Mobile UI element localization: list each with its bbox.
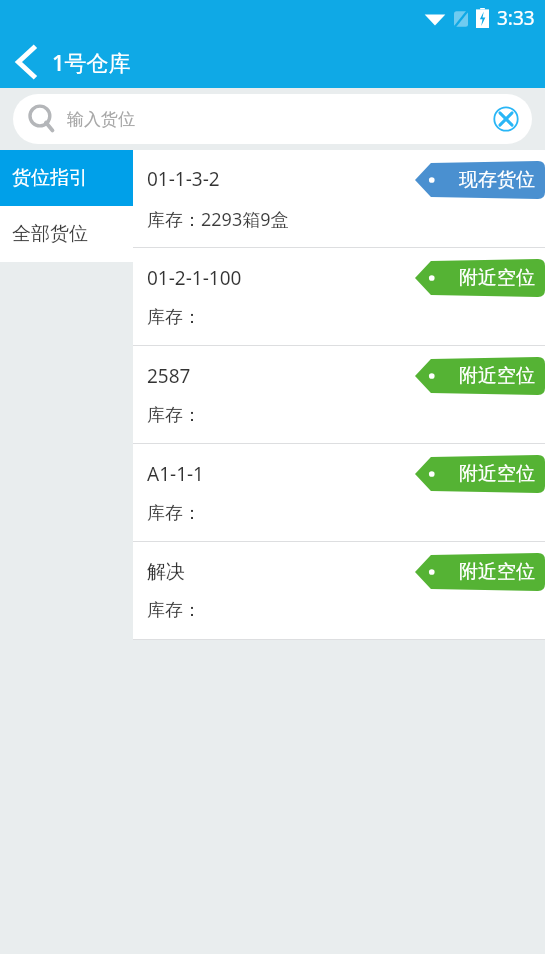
staticText: 附近空位 [459,462,535,486]
button[interactable]: 附近空位 [415,357,545,395]
button[interactable]: 全部货位 [0,206,133,262]
staticText: 库存： [147,404,201,427]
button[interactable]: Back [0,35,52,88]
staticText: 01-1-3-2 [147,166,220,192]
button[interactable]: 01-1-3-2 [133,150,545,248]
staticText: 库存： [147,599,201,622]
staticText: A1-1-1 [147,461,204,487]
staticText: 1号仓库 [52,47,131,77]
button[interactable]: 2587 [133,346,545,444]
button[interactable]: 附近空位 [415,553,545,591]
button[interactable]: 解决 [133,542,545,640]
staticText: 附近空位 [459,364,535,388]
staticText: 解决 [147,560,185,584]
staticText: 3:33 [497,5,535,31]
button[interactable]: 01-2-1-100 [133,248,545,346]
staticText: 库存：2293箱9盒 [147,207,289,232]
button[interactable]: 货位指引 [0,150,133,206]
staticText: 附近空位 [459,560,535,584]
button[interactable]: A1-1-1 [133,444,545,542]
staticText: 2587 [147,363,191,389]
staticText: 现存货位 [459,168,535,192]
staticText: 01-2-1-100 [147,265,242,291]
button[interactable]: Clear [484,97,528,141]
staticText: 附近空位 [459,266,535,290]
button[interactable]: 输入货位 [13,94,532,144]
button[interactable]: 附近空位 [415,455,545,493]
staticText: 库存： [147,306,201,329]
staticText: 全部货位 [12,222,88,246]
button[interactable]: 现存货位 [415,161,545,199]
button[interactable]: 附近空位 [415,259,545,297]
staticText: 库存： [147,502,201,525]
staticText: 货位指引 [12,166,88,190]
staticText: 输入货位 [67,109,484,130]
